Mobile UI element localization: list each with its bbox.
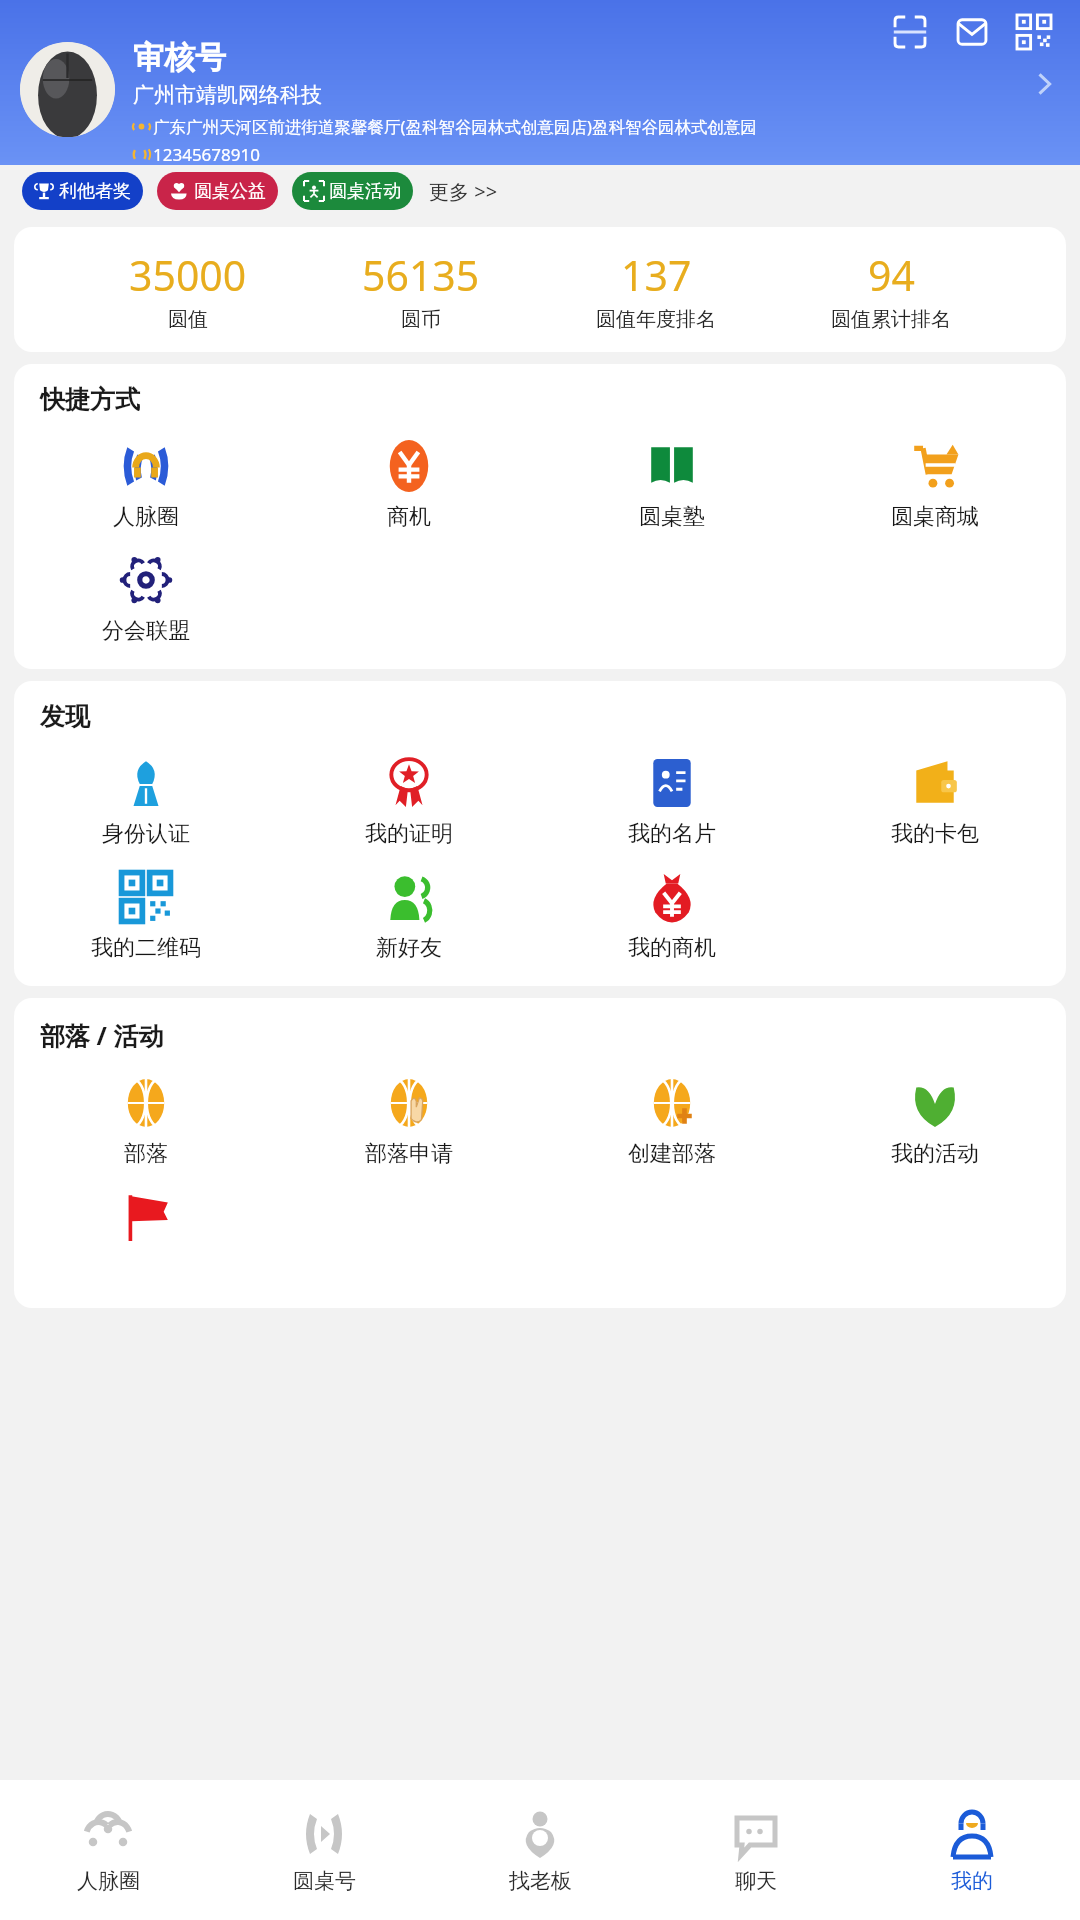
staticText: 35000 — [129, 247, 247, 303]
staticText: 部落申请 — [365, 1140, 453, 1168]
staticText: 我的二维码 — [91, 934, 201, 962]
button[interactable]: 部落 — [14, 1064, 277, 1178]
button[interactable]: 找老板 — [432, 1780, 648, 1920]
staticText: 找老板 — [509, 1868, 572, 1894]
staticText: 人脉圈 — [77, 1868, 140, 1894]
button[interactable]: Scan — [886, 8, 934, 56]
staticText: 圆值 — [168, 307, 208, 332]
button[interactable]: 圆桌号 — [216, 1780, 432, 1920]
staticText: 圆桌商城 — [891, 503, 979, 531]
staticText: 我的活动 — [891, 1140, 979, 1168]
button[interactable]: 我的商机 — [540, 858, 803, 972]
button[interactable]: 商机 — [277, 427, 540, 541]
button[interactable]: 我的证明 — [277, 744, 540, 858]
button[interactable]: 聊天 — [648, 1780, 864, 1920]
button[interactable]: 创建部落 — [540, 1064, 803, 1178]
button[interactable]: 圆桌公益 — [157, 172, 278, 210]
staticText: 圆币 — [401, 307, 441, 332]
staticText: 创建部落 — [628, 1140, 716, 1168]
staticText: 94 — [868, 247, 915, 303]
staticText: 137 — [621, 247, 692, 303]
staticText: 利他者奖 — [59, 180, 131, 203]
staticText: 更多 >> — [429, 178, 498, 205]
staticText: 我的卡包 — [891, 820, 979, 848]
staticText: 部落 — [124, 1140, 168, 1168]
button[interactable]: 利他者奖 — [22, 172, 143, 210]
staticText: 身份认证 — [102, 820, 190, 848]
staticText: 聊天 — [735, 1868, 777, 1894]
staticText: 分会联盟 — [102, 617, 190, 645]
button[interactable]: 我的名片 — [540, 744, 803, 858]
staticText: 商机 — [387, 503, 431, 531]
staticText: 我的名片 — [628, 820, 716, 848]
staticText: 圆桌号 — [293, 1868, 356, 1894]
staticText: 人脉圈 — [113, 503, 179, 531]
button[interactable]: 圆桌商城 — [803, 427, 1066, 541]
staticText: 广东广州天河区前进街道聚馨餐厅(盈科智谷园林式创意园店)盈科智谷园林式创意园 — [153, 115, 757, 138]
button[interactable]: 我的 — [864, 1780, 1080, 1920]
button[interactable]: QR code — [1010, 8, 1058, 56]
button[interactable]: 部落申请 — [277, 1064, 540, 1178]
button[interactable]: 我的二维码 — [14, 858, 277, 972]
staticText: 圆桌公益 — [194, 180, 266, 203]
staticText: 新好友 — [376, 934, 442, 962]
staticText: 部落 / 活动 — [40, 1018, 164, 1052]
button[interactable]: 审核号 — [20, 36, 1070, 165]
button[interactable]: 我的活动 — [803, 1064, 1066, 1178]
staticText: 圆值累计排名 — [831, 307, 951, 332]
staticText: 12345678910 — [153, 143, 260, 165]
staticText: 56135 — [362, 247, 480, 303]
button[interactable]: 人脉圈 — [14, 427, 277, 541]
button[interactable]: 分会联盟 — [14, 541, 277, 655]
button[interactable]: 35000 — [14, 227, 1066, 352]
button[interactable]: 我的卡包 — [803, 744, 1066, 858]
staticText: 快捷方式 — [40, 384, 140, 415]
button[interactable]: Messages — [948, 8, 996, 56]
staticText: 圆桌活动 — [329, 180, 401, 203]
staticText: 我的证明 — [365, 820, 453, 848]
staticText: 广州市靖凯网络科技 — [133, 82, 322, 108]
button[interactable] — [14, 1178, 277, 1294]
button[interactable]: More details — [1024, 64, 1064, 104]
button[interactable]: 身份认证 — [14, 744, 277, 858]
staticText: 圆值年度排名 — [596, 307, 716, 332]
staticText: 我的 — [951, 1868, 993, 1894]
button[interactable]: 更多 >> — [427, 172, 500, 211]
button[interactable]: 人脉圈 — [0, 1780, 216, 1920]
button[interactable]: 圆桌塾 — [540, 427, 803, 541]
staticText: 审核号 — [133, 38, 226, 77]
staticText: 发现 — [40, 701, 90, 732]
button[interactable]: 新好友 — [277, 858, 540, 972]
staticText: 我的商机 — [628, 934, 716, 962]
staticText: 圆桌塾 — [639, 503, 705, 531]
button[interactable]: 圆桌活动 — [292, 172, 413, 210]
